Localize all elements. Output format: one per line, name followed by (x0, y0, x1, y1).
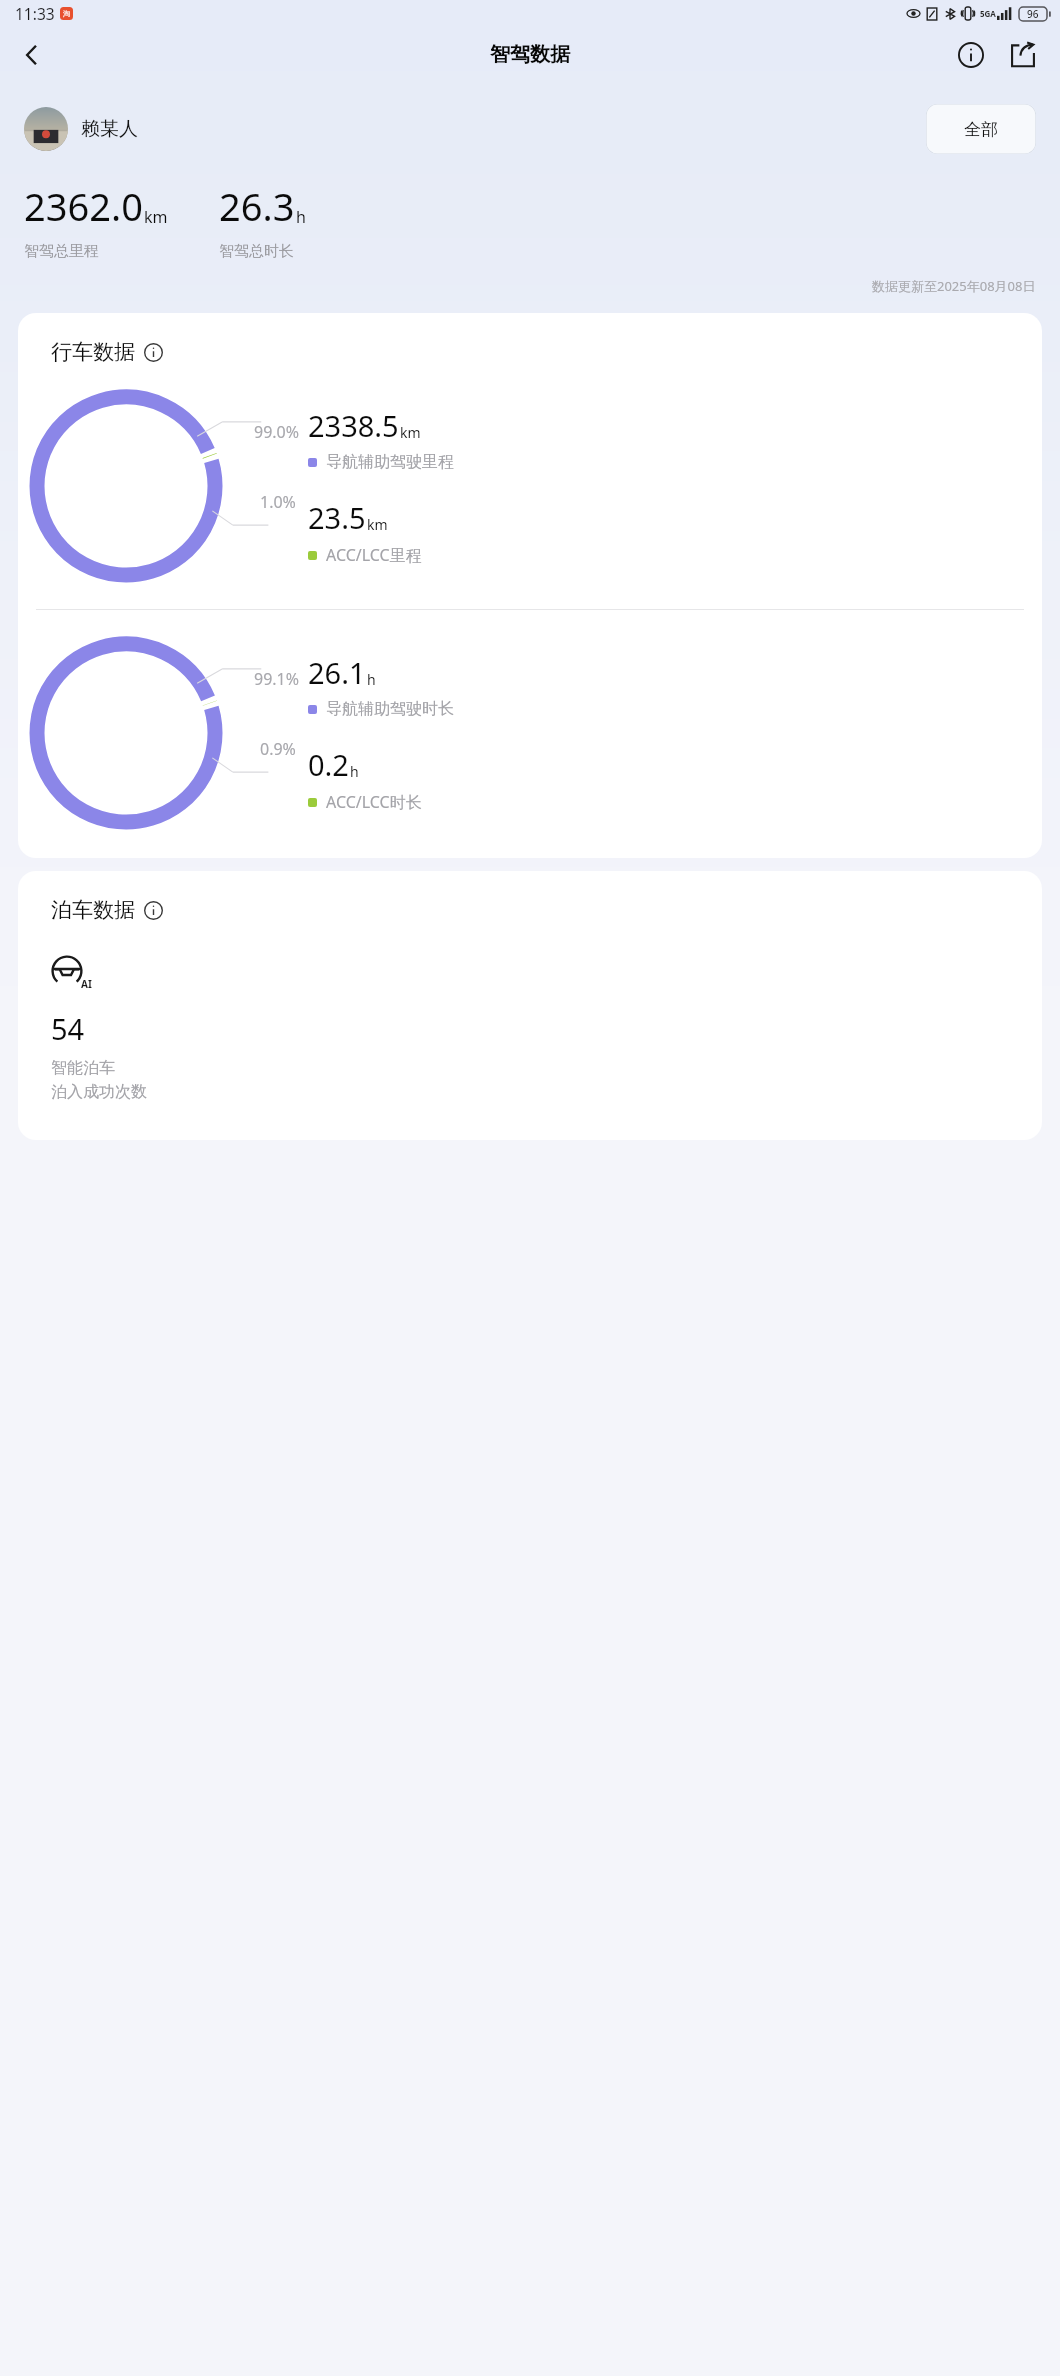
staticText: h (296, 206, 306, 228)
staticText: 96 (1027, 7, 1039, 21)
staticText: 0.2 (308, 745, 349, 784)
staticText: 数据更新至2025年08月08日 (872, 277, 1036, 295)
staticText: h (367, 670, 376, 689)
staticText: 5GA (980, 8, 996, 19)
button[interactable]: 全部 (926, 104, 1036, 154)
staticText: 23.5 (308, 498, 366, 537)
staticText: 99.1% (254, 668, 300, 690)
staticText: 导航辅助驾驶时长 (326, 699, 454, 719)
staticText: 99.0% (254, 421, 300, 443)
staticText: 全部 (964, 119, 998, 140)
staticText: 泊车数据 (51, 897, 135, 923)
button[interactable]: Information (948, 32, 994, 78)
staticText: 导航辅助驾驶里程 (326, 452, 454, 472)
staticText: km (367, 515, 388, 534)
staticText: 2338.5 (308, 406, 399, 445)
staticText: 智能泊车 (51, 1058, 115, 1078)
staticText: ACC/LCC里程 (326, 544, 422, 566)
staticText: 54 (51, 1009, 85, 1048)
staticText: h (350, 762, 359, 781)
staticText: AI (81, 977, 92, 991)
staticText: km (144, 206, 168, 228)
button[interactable]: Profile avatar (24, 107, 68, 151)
staticText: 智驾总里程 (24, 242, 99, 261)
staticText: 赖某人 (81, 117, 138, 141)
staticText: 泊入成功次数 (51, 1082, 147, 1102)
staticText: ACC/LCC时长 (326, 791, 422, 813)
staticText: 智驾数据 (490, 42, 570, 67)
button[interactable]: 泊车数据 (51, 897, 163, 923)
staticText: km (400, 423, 421, 442)
button[interactable]: Share (1000, 32, 1046, 78)
button[interactable]: Back (8, 31, 56, 79)
staticText: 行车数据 (51, 339, 135, 365)
staticText: 26.3 (219, 180, 295, 232)
staticText: 1.0% (260, 491, 296, 513)
staticText: 淘 (63, 9, 70, 18)
staticText: 智驾总时长 (219, 242, 294, 261)
staticText: 26.1 (308, 653, 366, 692)
staticText: 2362.0 (24, 180, 143, 232)
staticText: 0.9% (260, 738, 296, 760)
staticText: 11:33 (15, 3, 55, 24)
button[interactable]: 行车数据 (51, 339, 163, 365)
